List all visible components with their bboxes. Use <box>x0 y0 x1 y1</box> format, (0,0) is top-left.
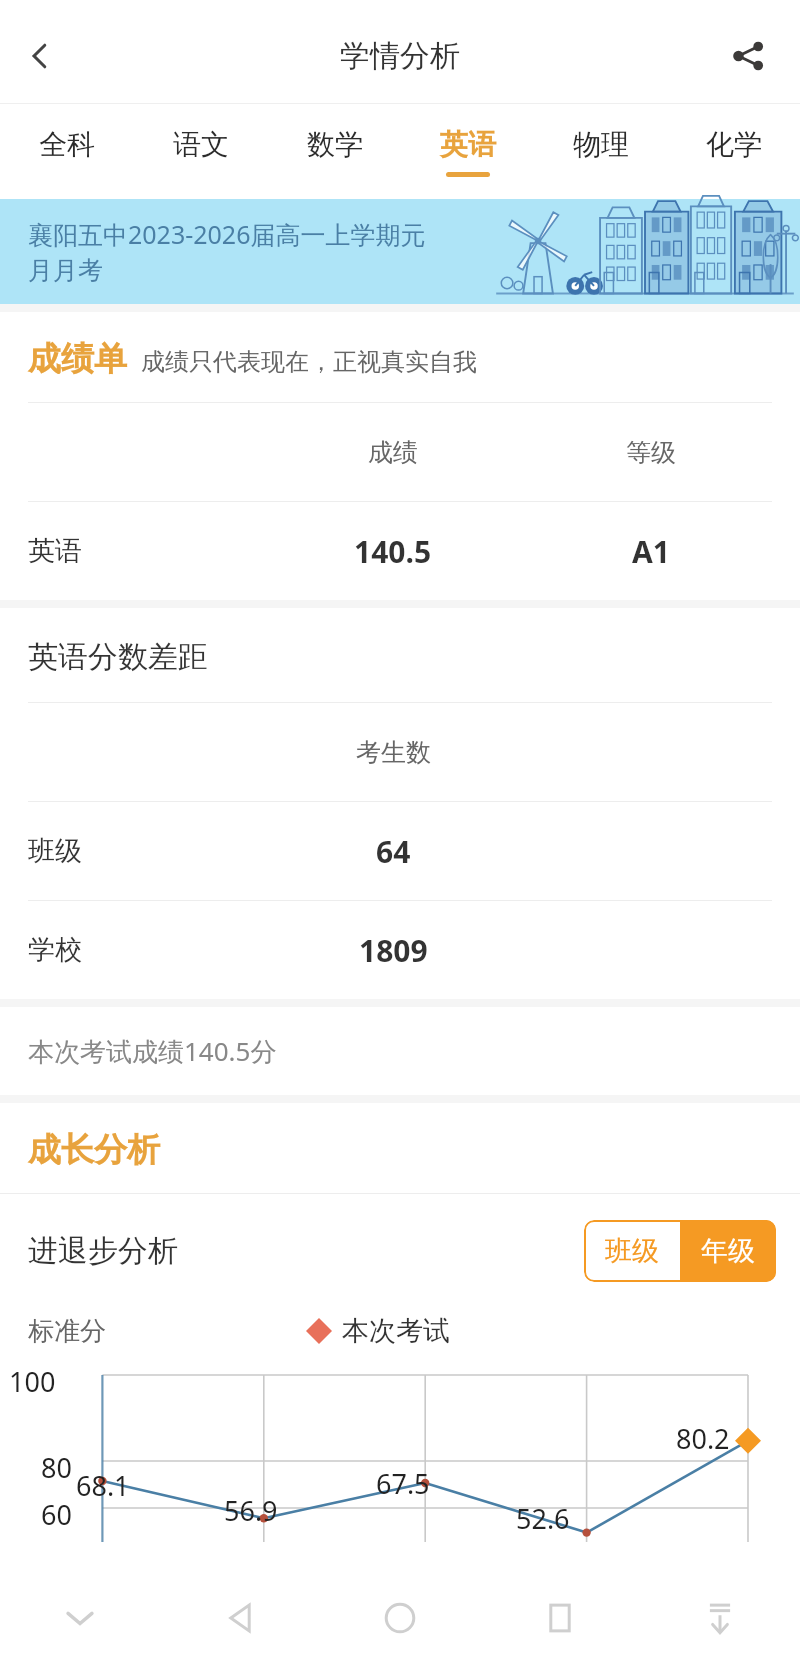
button[interactable]: 班级 <box>584 1220 680 1282</box>
staticText: 本次考试 <box>342 1314 450 1348</box>
button[interactable]: Back <box>8 24 72 88</box>
button[interactable]: Hide keyboard <box>0 1565 160 1670</box>
staticText: 月月考 <box>28 255 103 286</box>
button[interactable]: 英语 <box>401 104 534 199</box>
staticText: 全科 <box>39 127 95 162</box>
staticText: 64 <box>376 831 411 872</box>
staticText: 化学 <box>706 127 762 162</box>
button[interactable]: 成绩 <box>0 403 800 501</box>
staticText: 1809 <box>359 930 428 971</box>
staticText: 成长分析 <box>28 1129 160 1171</box>
button[interactable]: 数学 <box>268 104 401 199</box>
staticText: 考生数 <box>356 737 431 768</box>
button[interactable]: Home <box>320 1565 480 1670</box>
staticText: 60 <box>41 1496 72 1533</box>
staticText: 成绩 <box>368 437 418 468</box>
staticText: 52.6 <box>516 1500 570 1537</box>
staticText: 学情分析 <box>340 37 460 75</box>
staticText: 80 <box>41 1449 72 1486</box>
button[interactable]: 化学 <box>667 104 800 199</box>
button[interactable]: 语文 <box>134 104 268 199</box>
button[interactable]: Download <box>640 1565 800 1670</box>
staticText: 140.5 <box>354 531 432 572</box>
staticText: 本次考试成绩140.5分 <box>28 1033 277 1069</box>
staticText: 襄阳五中2023-2026届高一上学期元 <box>28 217 426 251</box>
staticText: 100 <box>9 1363 56 1400</box>
staticText: 80.2 <box>676 1420 730 1457</box>
staticText: 成绩只代表现在，正视真实自我 <box>141 347 477 377</box>
staticText: 英语分数差距 <box>28 638 208 676</box>
staticText: 年级 <box>701 1234 755 1268</box>
staticText: 语文 <box>173 127 229 162</box>
staticText: 68.1 <box>76 1467 130 1504</box>
button[interactable]: 学校 <box>0 901 800 999</box>
staticText: 标准分 <box>28 1315 106 1348</box>
staticText: 等级 <box>626 437 676 468</box>
staticText: 进退步分析 <box>28 1232 178 1270</box>
button[interactable]: 全科 <box>0 104 134 199</box>
staticText: 56.9 <box>224 1492 278 1529</box>
staticText: 成绩单 <box>28 338 127 380</box>
button[interactable]: Back <box>160 1565 320 1670</box>
staticText: 班级 <box>605 1234 659 1268</box>
staticText: 物理 <box>573 127 629 162</box>
button[interactable]: Share <box>718 26 778 86</box>
staticText: 班级 <box>28 834 82 868</box>
staticText: 数学 <box>307 127 363 162</box>
staticText: 67.5 <box>376 1465 430 1502</box>
button[interactable]: 班级 <box>0 802 800 900</box>
staticText: 英语 <box>440 127 496 162</box>
staticText: 学校 <box>28 933 82 967</box>
button[interactable]: 英语 <box>0 502 800 600</box>
staticText: 英语 <box>28 534 82 568</box>
button[interactable]: 考生数 <box>0 703 800 801</box>
button[interactable]: 物理 <box>534 104 667 199</box>
button[interactable]: 年级 <box>680 1220 776 1282</box>
button[interactable]: Recents <box>480 1565 640 1670</box>
staticText: A1 <box>632 531 670 572</box>
